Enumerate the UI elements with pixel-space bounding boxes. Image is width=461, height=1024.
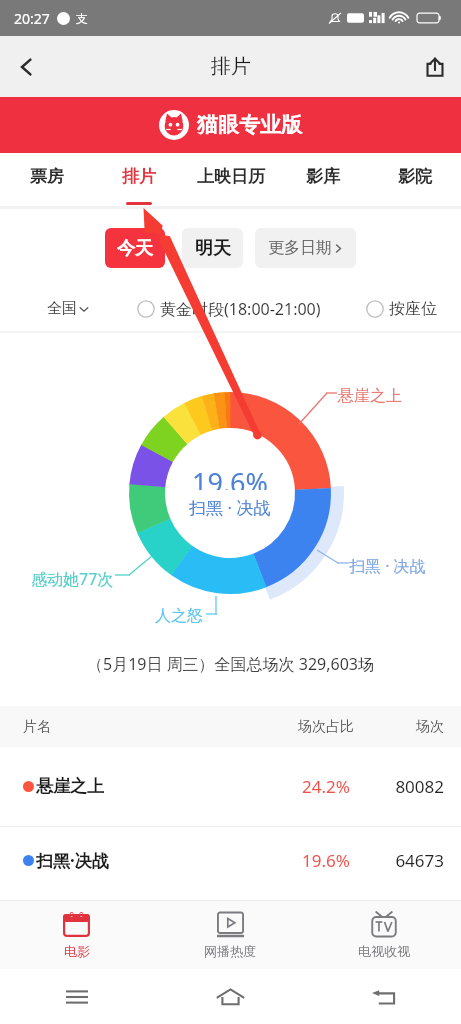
staticText: 全国 [47, 299, 77, 318]
staticText: 悬崖之上 [338, 386, 402, 406]
staticText: 19.6% [192, 464, 269, 490]
staticText: 黄金时段(18:00-21:00) [160, 298, 321, 320]
button[interactable]: 全国 [47, 299, 89, 318]
button[interactable]: Recent apps [0, 969, 153, 1024]
staticText: 场次 [380, 718, 444, 736]
staticText: 网播热度 [204, 943, 256, 959]
button[interactable]: 上映日历 [185, 153, 277, 206]
staticText: 感动她77次 [31, 568, 114, 590]
button[interactable]: 按座位 [366, 299, 437, 319]
staticText: 更多日期 [268, 238, 332, 258]
staticText: 排片 [122, 166, 156, 187]
staticText: 影库 [306, 166, 340, 187]
button[interactable]: 影库 [277, 153, 369, 206]
staticText: 19.6% [272, 849, 380, 872]
button[interactable]: 悬崖之上 [0, 747, 461, 826]
staticText: 64673 [380, 849, 444, 872]
staticText: 按座位 [389, 299, 437, 319]
button[interactable]: 票房 [0, 153, 93, 206]
button[interactable]: Back [0, 36, 52, 97]
staticText: 票房 [30, 166, 64, 187]
staticText: （5月19日 周三）全国总场次 329,603场 [87, 653, 374, 675]
staticText: 电视收视 [358, 943, 410, 959]
button[interactable]: Back [307, 969, 461, 1024]
button[interactable]: 电视收视 [307, 901, 461, 969]
staticText: 排片 [211, 54, 251, 79]
button[interactable]: 网播热度 [153, 901, 307, 969]
staticText: 支 [76, 11, 88, 26]
staticText: 20:27 [14, 9, 50, 28]
staticText: 悬崖之上 [36, 776, 104, 797]
staticText: 人之怒 [155, 606, 203, 626]
button[interactable]: Share [409, 36, 461, 97]
staticText: 80082 [380, 775, 444, 798]
staticText: 上映日历 [197, 166, 265, 187]
staticText: 扫黑·决战 [36, 849, 109, 872]
staticText: 24.2% [272, 775, 380, 798]
button[interactable]: 黄金时段(18:00-21:00) [137, 298, 321, 320]
staticText: 猫眼专业版 [197, 112, 302, 138]
button[interactable]: 更多日期 [255, 228, 356, 268]
staticText: 扫黑 · 决战 [189, 496, 271, 518]
button[interactable]: 扫黑·决战 [0, 827, 461, 894]
button[interactable]: 影院 [369, 153, 461, 206]
button[interactable]: 明天 [182, 228, 243, 268]
staticText: 电影 [64, 943, 90, 959]
button[interactable]: 排片 [93, 153, 185, 206]
staticText: 今天 [117, 237, 153, 260]
staticText: 明天 [195, 237, 231, 260]
staticText: 场次占比 [272, 718, 380, 736]
button[interactable]: 今天 [105, 228, 165, 268]
staticText: 扫黑 · 决战 [349, 555, 426, 577]
button[interactable]: 电影 [0, 901, 153, 969]
staticText: 影院 [398, 166, 432, 187]
staticText: 片名 [23, 718, 272, 736]
button[interactable]: Home [153, 969, 307, 1024]
